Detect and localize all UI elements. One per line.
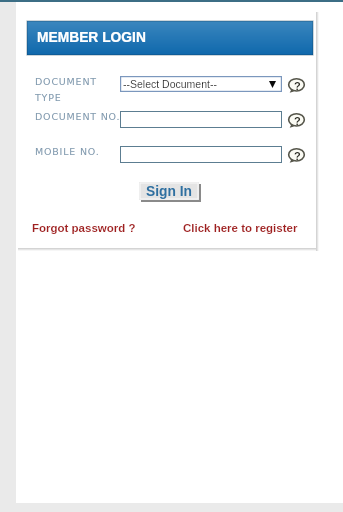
staticText: MOBILE NO. bbox=[35, 146, 100, 157]
button[interactable] bbox=[120, 146, 282, 163]
staticText: ? bbox=[294, 115, 301, 127]
button[interactable]: Help bbox=[288, 77, 305, 94]
button[interactable]: Sign In bbox=[139, 182, 201, 202]
button[interactable]: MEMBER LOGIN bbox=[27, 21, 313, 55]
button[interactable]: Help bbox=[288, 147, 305, 164]
button[interactable]: Forgot password ? bbox=[32, 222, 136, 235]
staticText: ? bbox=[294, 80, 301, 92]
staticText: DOCUMENT NO. bbox=[35, 111, 121, 122]
staticText: Sign In bbox=[146, 184, 192, 199]
button[interactable] bbox=[120, 111, 282, 128]
button[interactable]: --Select Document-- bbox=[120, 76, 282, 92]
staticText: DOCUMENT TYPE bbox=[35, 76, 130, 103]
staticText: MEMBER LOGIN bbox=[37, 30, 146, 45]
staticText: ? bbox=[294, 150, 301, 162]
staticText: --Select Document-- bbox=[123, 78, 217, 90]
button[interactable]: Click here to register bbox=[183, 222, 298, 235]
button[interactable]: Help bbox=[288, 112, 305, 129]
